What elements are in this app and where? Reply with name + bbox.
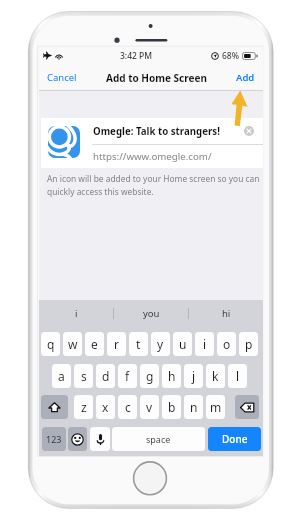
staticText: a bbox=[58, 368, 65, 384]
staticText: g bbox=[146, 368, 154, 384]
staticText: b bbox=[168, 399, 176, 415]
staticText: 3:42 PM bbox=[120, 50, 153, 62]
staticText: c bbox=[125, 399, 131, 415]
button[interactable]: Add bbox=[235, 69, 256, 86]
staticText: space bbox=[146, 433, 171, 445]
button[interactable]: q bbox=[41, 332, 60, 356]
staticText: p bbox=[245, 336, 253, 352]
staticText: e bbox=[91, 336, 98, 352]
button[interactable]: c bbox=[118, 395, 137, 419]
staticText: hi bbox=[222, 307, 231, 320]
button[interactable]: x bbox=[96, 395, 115, 419]
button[interactable]: y bbox=[151, 332, 170, 356]
button[interactable]: u bbox=[173, 332, 192, 356]
staticText: x bbox=[102, 399, 109, 415]
staticText: l bbox=[236, 368, 240, 384]
staticText: 68% bbox=[222, 50, 239, 62]
button[interactable]: r bbox=[107, 332, 126, 356]
button[interactable]: space bbox=[112, 427, 205, 451]
button[interactable]: i bbox=[39, 300, 113, 327]
button[interactable]: Clear title bbox=[244, 126, 254, 136]
button[interactable]: d bbox=[96, 364, 115, 388]
staticText: n bbox=[190, 399, 198, 415]
button[interactable]: b bbox=[162, 395, 181, 419]
staticText: k bbox=[212, 368, 219, 384]
button[interactable]: https://www.omegle.com/ bbox=[93, 144, 263, 169]
button[interactable]: s bbox=[74, 364, 93, 388]
staticText: f bbox=[125, 368, 130, 384]
button[interactable]: you bbox=[114, 300, 188, 327]
button[interactable]: Backspace bbox=[235, 395, 259, 419]
staticText: y bbox=[157, 336, 164, 352]
button[interactable]: Done bbox=[208, 427, 261, 451]
staticText: v bbox=[146, 399, 153, 415]
button[interactable]: f bbox=[118, 364, 137, 388]
staticText: Omegle: Talk to strangers! bbox=[93, 125, 220, 138]
button[interactable]: j bbox=[184, 364, 203, 388]
staticText: d bbox=[102, 368, 110, 384]
button[interactable]: Omegle: Talk to strangers! bbox=[41, 118, 263, 144]
staticText: An icon will be added to your Home scree… bbox=[47, 173, 263, 198]
button[interactable]: t bbox=[129, 332, 148, 356]
button[interactable]: Cancel bbox=[46, 69, 78, 86]
button[interactable]: hi bbox=[189, 300, 263, 327]
button[interactable]: 123 bbox=[42, 427, 66, 451]
staticText: m bbox=[210, 399, 222, 415]
staticText: t bbox=[136, 336, 141, 352]
staticText: r bbox=[114, 336, 119, 352]
button[interactable]: Shift bbox=[41, 395, 68, 419]
staticText: z bbox=[81, 399, 87, 415]
staticText: Add to Home Screen bbox=[106, 71, 207, 85]
button[interactable]: h bbox=[162, 364, 181, 388]
staticText: o bbox=[223, 336, 231, 352]
button[interactable]: i bbox=[195, 332, 214, 356]
staticText: 123 bbox=[46, 433, 62, 445]
staticText: w bbox=[68, 336, 78, 352]
button[interactable]: Emoji bbox=[68, 427, 87, 451]
button[interactable]: e bbox=[85, 332, 104, 356]
staticText: h bbox=[168, 368, 176, 384]
button[interactable]: g bbox=[140, 364, 159, 388]
button[interactable]: n bbox=[184, 395, 203, 419]
staticText: i bbox=[203, 336, 207, 352]
button[interactable]: a bbox=[52, 364, 71, 388]
button[interactable]: z bbox=[74, 395, 93, 419]
button[interactable]: w bbox=[63, 332, 82, 356]
button[interactable]: o bbox=[217, 332, 236, 356]
button[interactable]: l bbox=[228, 364, 247, 388]
button[interactable]: k bbox=[206, 364, 225, 388]
staticText: s bbox=[81, 368, 87, 384]
button[interactable]: p bbox=[239, 332, 258, 356]
staticText: Cancel bbox=[47, 71, 77, 84]
staticText: i bbox=[75, 307, 78, 320]
button[interactable]: Dictation bbox=[90, 427, 110, 451]
staticText: q bbox=[47, 336, 55, 352]
staticText: Done bbox=[222, 432, 248, 446]
staticText: Add bbox=[236, 71, 255, 84]
button[interactable]: v bbox=[140, 395, 159, 419]
staticText: u bbox=[179, 336, 187, 352]
button[interactable]: m bbox=[206, 395, 225, 419]
staticText: you bbox=[143, 307, 160, 320]
staticText: https://www.omegle.com/ bbox=[93, 150, 212, 163]
staticText: j bbox=[192, 368, 196, 384]
